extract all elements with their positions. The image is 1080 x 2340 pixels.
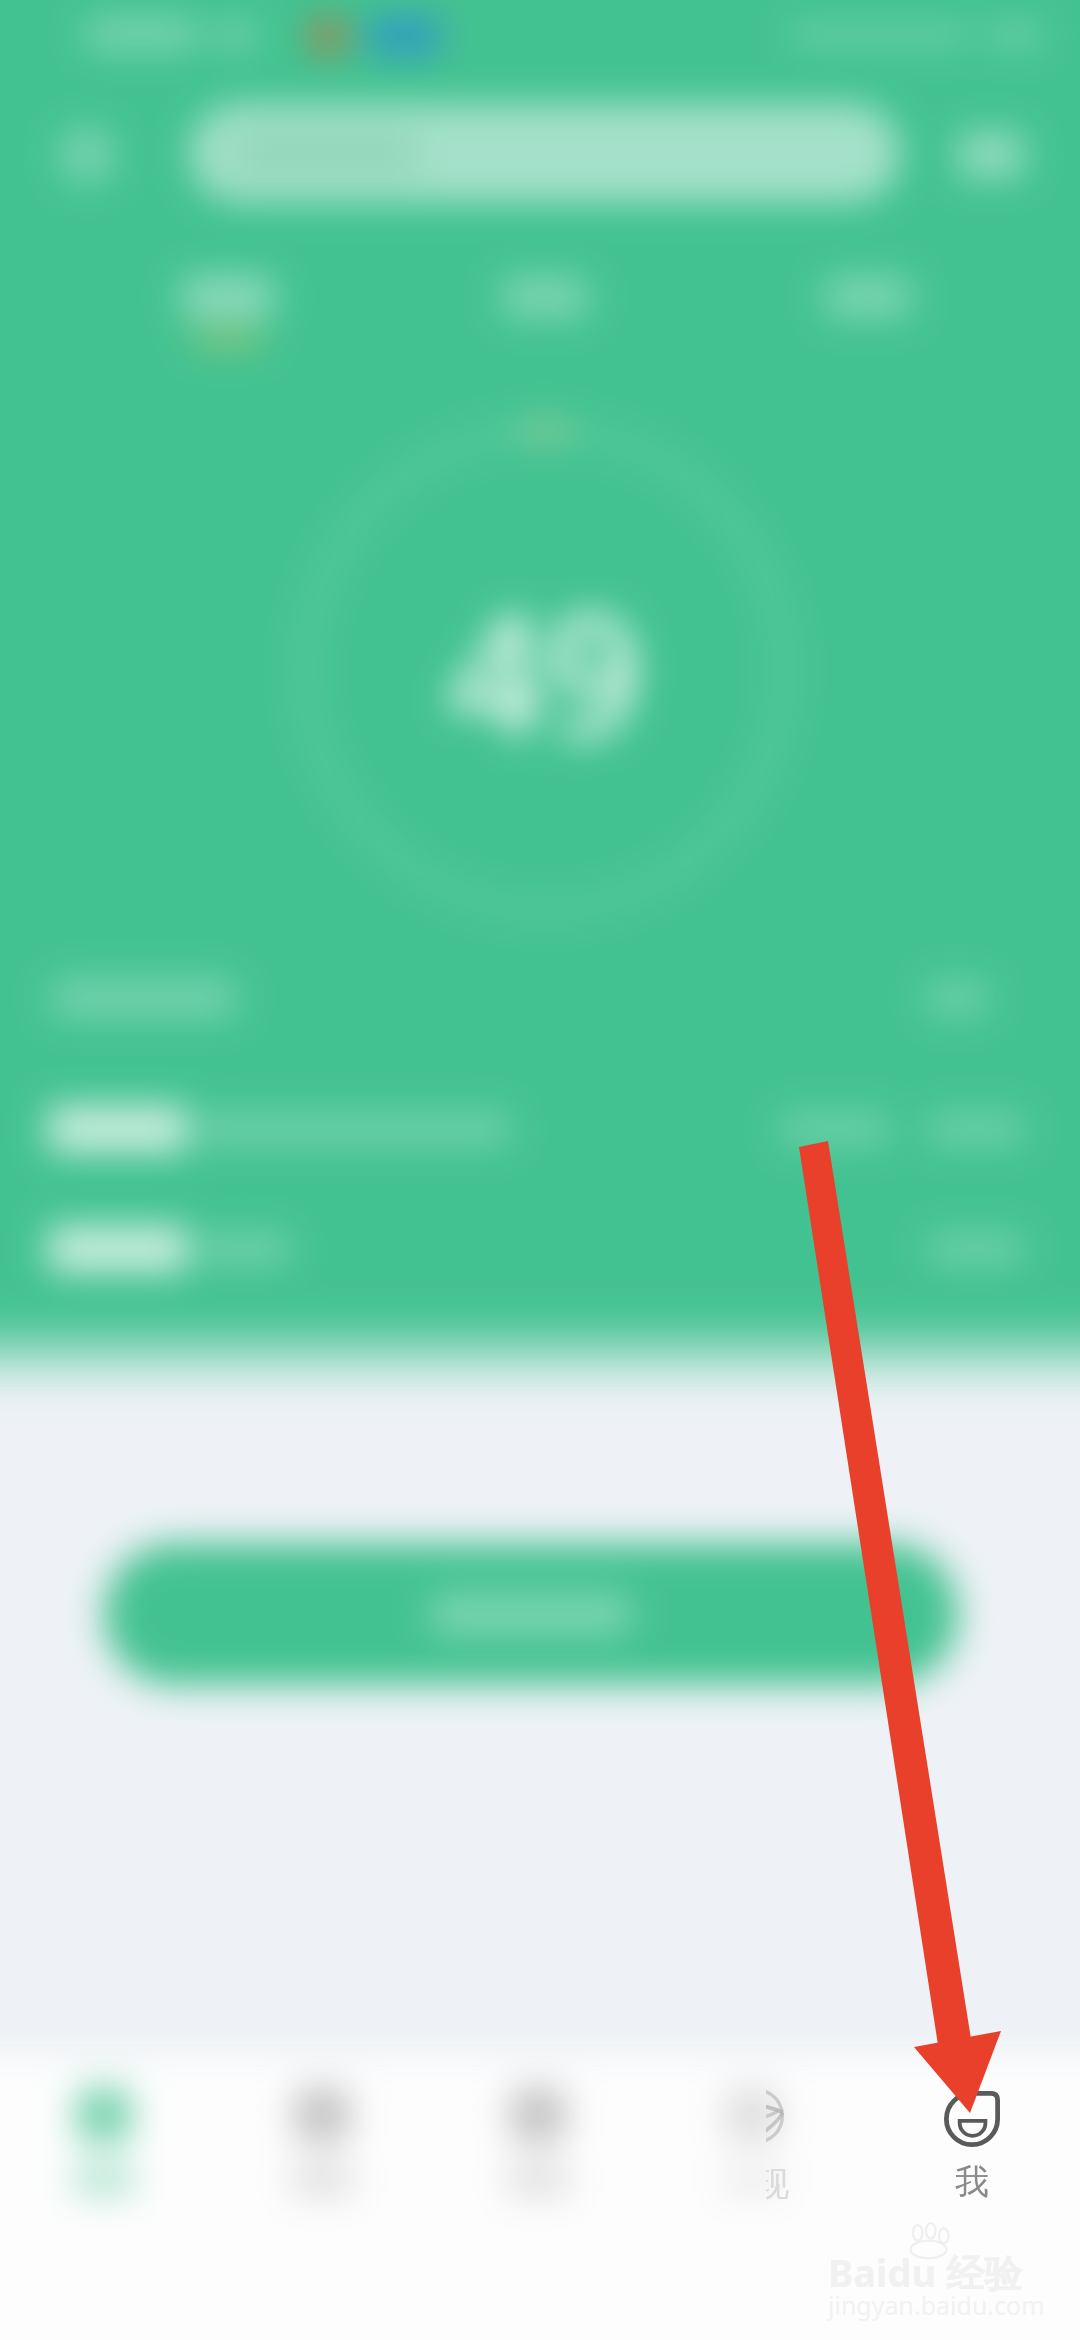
staticText: 49	[449, 556, 642, 785]
staticText: 我	[955, 2160, 989, 2203]
button[interactable]	[798, 276, 938, 318]
button[interactable]	[58, 126, 116, 184]
staticText: 发现	[766, 2163, 789, 2205]
staticText: jingyan.baidu.com	[828, 2288, 1045, 2322]
button[interactable]	[252, 2057, 392, 2247]
button[interactable]	[475, 276, 615, 318]
button[interactable]	[682, 2057, 822, 2247]
button[interactable]	[0, 1210, 1080, 1286]
button[interactable]	[0, 1090, 1080, 1166]
button[interactable]: 我	[902, 2057, 1042, 2247]
button[interactable]	[468, 2057, 608, 2247]
button[interactable]	[158, 276, 298, 347]
button[interactable]	[34, 2057, 174, 2247]
button[interactable]	[958, 132, 1024, 178]
staticText: Baidu 经验	[828, 2246, 1022, 2298]
button[interactable]	[104, 1543, 958, 1685]
button[interactable]	[190, 104, 900, 202]
button[interactable]: 发现	[766, 2057, 842, 2247]
